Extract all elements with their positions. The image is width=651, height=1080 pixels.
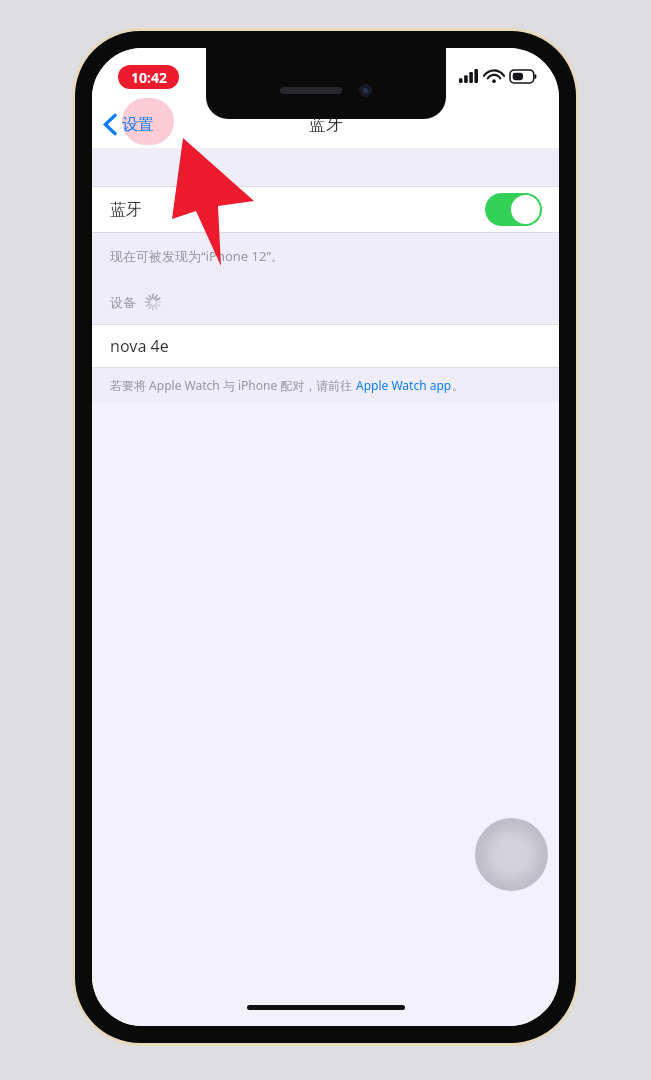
staticText: nova 4e — [110, 335, 169, 357]
staticText: 设备 — [110, 294, 136, 310]
staticText: 。 — [452, 378, 464, 393]
staticText: 现在可被发现为“iPhone 12”。 — [110, 247, 285, 265]
staticText: 10:42 — [131, 68, 167, 87]
button[interactable]: Recording control — [475, 818, 548, 891]
staticText: 蓝牙 — [110, 200, 142, 220]
button[interactable]: Bluetooth on — [485, 193, 542, 226]
button[interactable]: Back to 设置 — [104, 114, 154, 135]
button[interactable]: Apple Watch app — [356, 377, 452, 393]
staticText: 设置 — [122, 115, 154, 135]
button[interactable]: nova 4e — [92, 325, 559, 367]
staticText: 蓝牙 — [309, 114, 343, 135]
staticText: 若要将 Apple Watch 与 iPhone 配对，请前往 — [110, 377, 356, 393]
staticText: Apple Watch app — [356, 377, 452, 393]
button[interactable]: 蓝牙 — [92, 187, 559, 232]
